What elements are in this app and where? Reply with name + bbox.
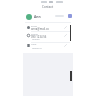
button[interactable]: Email [23,25,73,34]
staticText: Email [31,25,37,28]
button[interactable]: Edit [64,26,67,29]
button[interactable]: Note [23,43,73,52]
staticText: 090 1234 56 [31,35,47,39]
staticText: anna@mail.co [31,27,49,31]
button[interactable]: Edit [64,34,67,37]
staticText: Note [31,43,37,46]
button[interactable]: Message [68,14,72,18]
staticText: Contact [42,5,54,9]
staticText: Ann [34,14,41,18]
staticText: Phone [31,33,38,36]
button[interactable]: Ann [23,10,73,21]
staticText: memo 01 [32,47,43,50]
button[interactable]: Edit [64,44,67,47]
button[interactable]: Phone [23,33,73,42]
staticText: mobile [32,38,40,41]
